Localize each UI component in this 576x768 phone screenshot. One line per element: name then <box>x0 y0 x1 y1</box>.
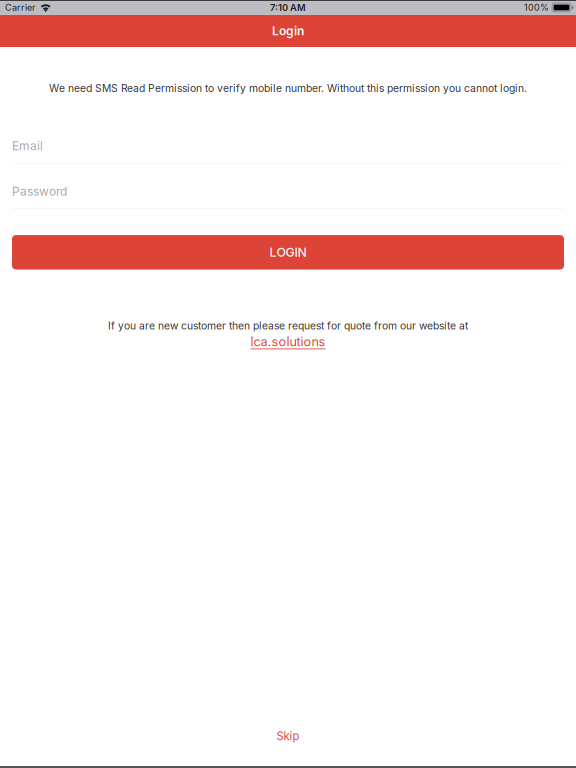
staticText: Password <box>12 184 67 198</box>
staticText: Email <box>12 138 43 153</box>
button[interactable]: Skip <box>276 729 299 743</box>
button[interactable]: Email <box>12 138 564 164</box>
button[interactable]: lca.solutions <box>250 334 325 349</box>
staticText: Login <box>272 24 304 38</box>
staticText: 7:10 AM <box>270 2 306 13</box>
staticText: Skip <box>276 729 299 743</box>
button[interactable]: LOGIN <box>12 235 564 269</box>
staticText: 100% <box>524 2 549 13</box>
staticText: Carrier <box>5 2 35 13</box>
staticText: We need SMS Read Permission to verify mo… <box>49 82 527 94</box>
staticText: lca.solutions <box>250 334 325 349</box>
staticText: LOGIN <box>269 245 306 260</box>
button[interactable]: Password <box>12 184 564 209</box>
staticText: If you are new customer then please requ… <box>108 319 468 332</box>
